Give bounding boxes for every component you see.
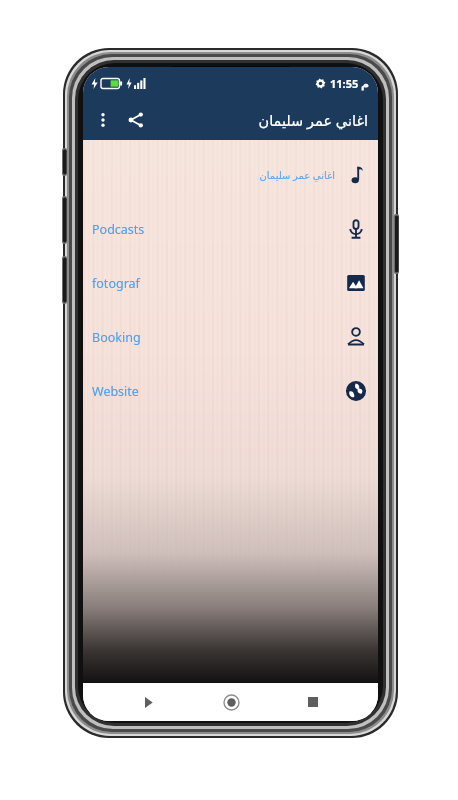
button[interactable]: More options	[89, 106, 117, 134]
staticText: اغاني عمر سليمان	[258, 110, 368, 130]
staticText: Booking	[92, 329, 335, 346]
button[interactable]: Recents	[296, 685, 330, 719]
staticText: Podcasts	[92, 221, 335, 238]
button[interactable]: Booking	[83, 310, 378, 364]
staticText: fotograf	[92, 275, 335, 292]
button[interactable]: اغاني عمر سليمان	[83, 148, 378, 202]
button[interactable]: Home	[214, 685, 248, 719]
button[interactable]: Website	[83, 364, 378, 418]
button[interactable]: Back	[131, 685, 165, 719]
staticText: م 11:55	[330, 76, 370, 91]
staticText: Website	[92, 383, 335, 400]
button[interactable]: fotograf	[83, 256, 378, 310]
button[interactable]: Share	[121, 105, 151, 135]
button[interactable]: Podcasts	[83, 202, 378, 256]
staticText: اغاني عمر سليمان	[92, 168, 335, 182]
